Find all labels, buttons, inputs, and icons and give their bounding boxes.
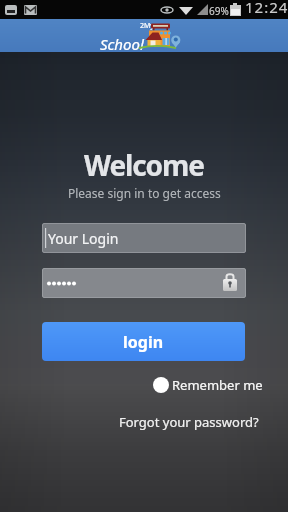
staticText: 69% bbox=[209, 4, 229, 18]
staticText: Forgot your password? bbox=[119, 413, 259, 431]
staticText: 2My bbox=[140, 21, 154, 31]
button[interactable]: Forgot your password? bbox=[118, 411, 260, 433]
staticText: School bbox=[100, 34, 144, 54]
button[interactable]: login bbox=[42, 322, 245, 361]
staticText: 12:24 bbox=[245, 0, 288, 16]
button[interactable]: Remember me bbox=[150, 374, 265, 396]
staticText: Remember me bbox=[172, 376, 263, 394]
staticText: Please sign in to get access bbox=[68, 185, 221, 201]
staticText: Your Login bbox=[48, 229, 119, 248]
button[interactable] bbox=[42, 268, 246, 298]
staticText: Welcome bbox=[84, 146, 204, 184]
staticText: login bbox=[123, 331, 164, 353]
button[interactable]: Your Login bbox=[42, 223, 246, 253]
